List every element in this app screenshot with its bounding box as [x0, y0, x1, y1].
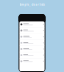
- button[interactable]: [19, 27, 45, 33]
- button[interactable]: [19, 34, 45, 40]
- button[interactable]: [19, 58, 45, 64]
- button[interactable]: [19, 40, 45, 46]
- button[interactable]: [19, 21, 45, 27]
- staticText: Simple, clear lists: [19, 3, 44, 6]
- button[interactable]: [19, 46, 45, 52]
- button[interactable]: [19, 52, 45, 58]
